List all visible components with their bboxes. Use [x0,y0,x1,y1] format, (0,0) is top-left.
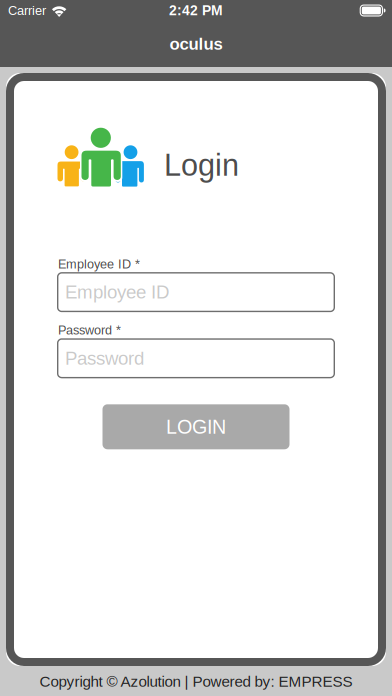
staticText: Employee ID [65,282,169,303]
staticText: oculus [169,35,222,53]
staticText: Password * [58,323,121,337]
staticText: Carrier [8,3,46,18]
staticText: Employee ID * [58,257,140,271]
staticText: 2:42 PM [169,3,223,18]
staticText: Password [65,348,144,369]
staticText: Copyright © Azolution | Powered by: EMPR… [39,673,352,690]
button[interactable]: LOGIN [102,404,289,449]
staticText: Login [164,148,239,182]
staticText: LOGIN [166,416,226,438]
